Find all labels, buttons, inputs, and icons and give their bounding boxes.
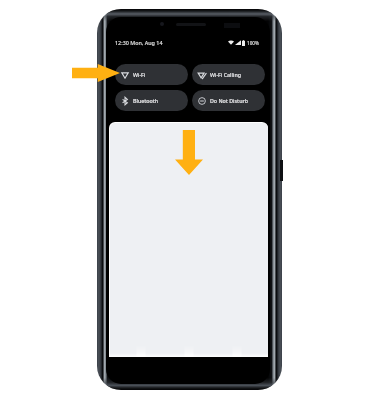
staticText: Do Not Disturb	[210, 97, 248, 104]
staticText: Wi-Fi	[133, 71, 146, 78]
button[interactable]: Wi-Fi	[115, 64, 188, 85]
button[interactable]: Bluetooth	[115, 90, 188, 111]
staticText: Bluetooth	[133, 97, 159, 104]
button[interactable]: Do Not Disturb	[192, 90, 265, 111]
staticText: 100%	[247, 40, 259, 46]
button[interactable]: Wi-Fi Calling	[192, 64, 265, 85]
staticText: Wi-Fi Calling	[210, 71, 242, 78]
staticText: 12:30 Mon, Aug 14	[115, 39, 163, 46]
